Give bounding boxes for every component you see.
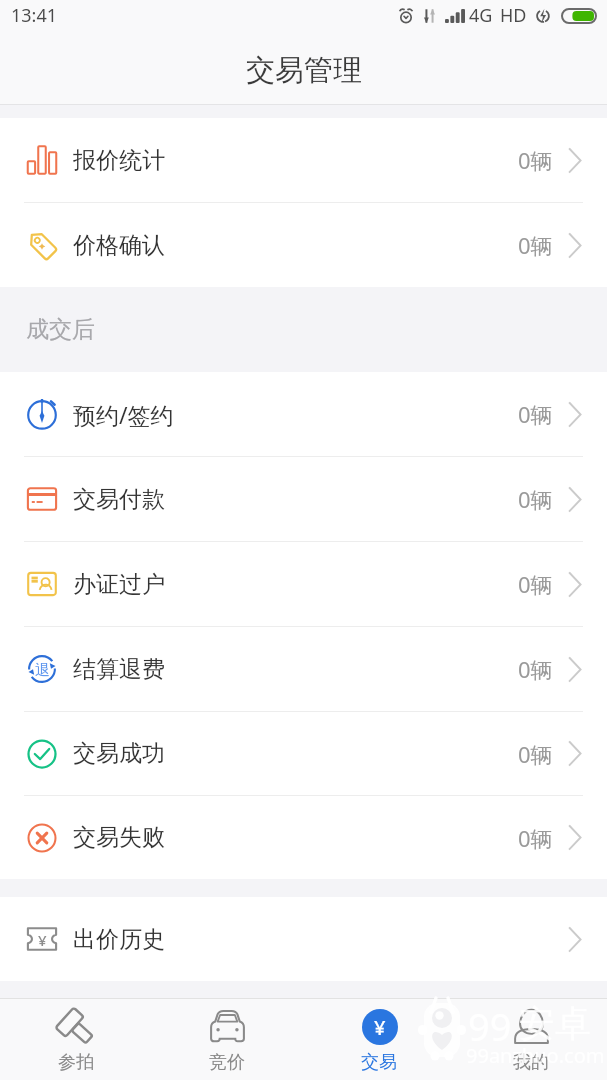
staticText: 办证过户 — [73, 570, 165, 599]
button[interactable]: 办证过户 — [0, 542, 607, 626]
staticText: 结算退费 — [73, 655, 165, 684]
button[interactable]: 退 — [0, 627, 607, 711]
staticText: 4G — [469, 3, 493, 28]
button[interactable]: 价格确认 — [0, 203, 607, 287]
staticText: 出价历史 — [73, 925, 165, 954]
staticText: ¥ — [38, 930, 47, 950]
staticText: 99anzhuo.com — [466, 1042, 605, 1069]
staticText: 价格确认 — [73, 231, 165, 260]
staticText: 交易管理 — [246, 52, 362, 89]
staticText: 成交后 — [26, 315, 95, 344]
staticText: 安卓 — [519, 1001, 591, 1046]
staticText: 0辆 — [518, 739, 553, 769]
staticText: 退 — [35, 661, 50, 680]
staticText: 0辆 — [518, 569, 553, 599]
staticText: 参拍 — [58, 1051, 94, 1074]
staticText: 交易付款 — [73, 485, 165, 514]
button[interactable]: 报价统计 — [0, 118, 607, 202]
staticText: HD — [500, 3, 527, 28]
button[interactable]: 交易成功 — [0, 712, 607, 795]
button[interactable]: 交易付款 — [0, 457, 607, 541]
staticText: 0辆 — [518, 145, 553, 175]
staticText: 报价统计 — [73, 146, 165, 175]
staticText: 0辆 — [518, 654, 553, 684]
button[interactable]: 交易失败 — [0, 796, 607, 879]
staticText: 0辆 — [518, 230, 553, 260]
staticText: 0辆 — [518, 399, 553, 429]
button[interactable]: 参拍 — [0, 999, 151, 1080]
staticText: ¥ — [374, 1014, 386, 1041]
staticText: 13:41 — [11, 3, 58, 28]
button[interactable]: 预约/签约 — [0, 372, 607, 456]
staticText: 0辆 — [518, 484, 553, 514]
staticText: 交易失败 — [73, 823, 165, 852]
staticText: 预约/签约 — [73, 399, 174, 430]
button[interactable]: 竞价 — [151, 999, 303, 1080]
staticText: 我的 — [513, 1051, 549, 1074]
staticText: 0辆 — [518, 823, 553, 853]
staticText: 交易成功 — [73, 739, 165, 768]
button[interactable]: ¥ — [303, 999, 455, 1080]
staticText: 交易 — [361, 1051, 397, 1074]
staticText: 竞价 — [209, 1051, 245, 1074]
button[interactable]: 我的 — [455, 999, 607, 1080]
button[interactable]: ¥ — [0, 897, 607, 981]
